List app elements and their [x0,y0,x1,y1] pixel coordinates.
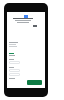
button[interactable] [27,80,42,85]
